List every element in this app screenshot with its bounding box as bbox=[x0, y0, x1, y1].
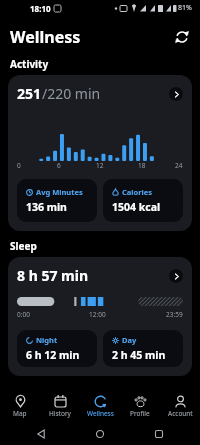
button[interactable] bbox=[37, 430, 45, 438]
button[interactable] bbox=[169, 87, 183, 101]
staticText: Profile bbox=[130, 409, 150, 418]
button[interactable]: Profile bbox=[120, 395, 160, 418]
button[interactable]: Avg Minutes bbox=[17, 179, 97, 222]
staticText: Avg Minutes bbox=[36, 187, 83, 197]
staticText: Night bbox=[36, 335, 58, 345]
staticText: History bbox=[49, 409, 71, 418]
staticText: 81% bbox=[178, 3, 192, 13]
button[interactable]: History bbox=[40, 395, 80, 418]
staticText: Map bbox=[13, 409, 27, 418]
button[interactable] bbox=[176, 31, 188, 43]
staticText: Activity bbox=[10, 57, 49, 71]
staticText: 6 bbox=[57, 161, 61, 170]
staticText: 0:00 bbox=[17, 310, 30, 319]
staticText: Wellness bbox=[10, 26, 81, 48]
staticText: 18:10 bbox=[30, 3, 51, 14]
staticText: Day bbox=[122, 335, 137, 345]
button[interactable]: Day bbox=[103, 330, 183, 367]
staticText: 1504 kcal bbox=[112, 200, 161, 214]
button[interactable] bbox=[96, 430, 104, 438]
staticText: 23:59 bbox=[166, 310, 183, 319]
staticText: 24 bbox=[175, 161, 183, 170]
staticText: 6 h 12 min bbox=[26, 348, 80, 362]
staticText: /220 min bbox=[42, 84, 101, 103]
staticText: Sleep bbox=[10, 239, 37, 253]
staticText: 18 bbox=[138, 161, 146, 170]
button[interactable]: Night bbox=[17, 330, 97, 367]
button[interactable] bbox=[169, 269, 183, 283]
staticText: 0 bbox=[17, 161, 21, 170]
staticText: 136 min bbox=[26, 200, 67, 214]
button[interactable]: Map bbox=[0, 395, 40, 418]
staticText: Wellness bbox=[87, 409, 114, 418]
staticText: 12:00 bbox=[89, 310, 106, 319]
staticText: Calories bbox=[122, 187, 153, 197]
staticText: 8 h 57 min bbox=[17, 266, 88, 285]
button[interactable]: Wellness bbox=[80, 395, 120, 418]
button[interactable] bbox=[155, 430, 163, 438]
staticText: 251 bbox=[17, 84, 42, 103]
button[interactable]: 251 bbox=[8, 75, 192, 231]
staticText: 2 h 45 min bbox=[112, 348, 166, 362]
staticText: Account bbox=[168, 409, 193, 418]
button[interactable]: Calories bbox=[103, 179, 183, 222]
button[interactable]: Account bbox=[160, 395, 200, 418]
button[interactable]: 8 h 57 min bbox=[8, 257, 192, 376]
staticText: 12 bbox=[96, 161, 104, 170]
